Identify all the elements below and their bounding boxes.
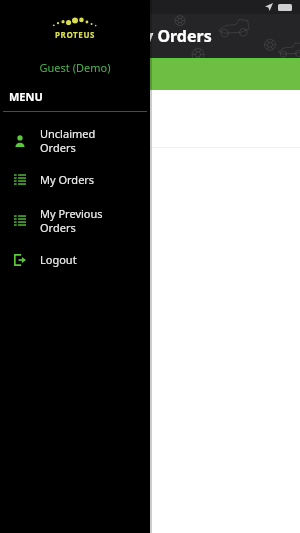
button[interactable]: Invoice No.#4942 bbox=[0, 59, 300, 90]
staticText: Pick-Up Address bbox=[28, 99, 112, 114]
staticText: Unclaimed Orders bbox=[40, 126, 96, 155]
staticText: Logout bbox=[40, 252, 77, 267]
staticText: Guest (Demo) bbox=[0, 60, 150, 75]
staticText: AL undefined bbox=[28, 127, 75, 137]
button[interactable]: Pick-Up Address bbox=[0, 90, 300, 147]
button[interactable]: My Orders bbox=[0, 166, 150, 193]
button[interactable]: Unclaimed Orders bbox=[0, 120, 150, 161]
staticText: My Orders bbox=[40, 172, 95, 187]
staticText: My Orders bbox=[129, 25, 212, 47]
button[interactable]: My Previous Orders bbox=[0, 200, 150, 241]
button[interactable]: Logout bbox=[0, 246, 150, 273]
staticText: MENU bbox=[9, 89, 43, 104]
staticText: My Previous Orders bbox=[40, 206, 103, 235]
staticText: PROTEUS bbox=[55, 29, 96, 40]
staticText: Invoice No.#4942 bbox=[10, 63, 109, 79]
